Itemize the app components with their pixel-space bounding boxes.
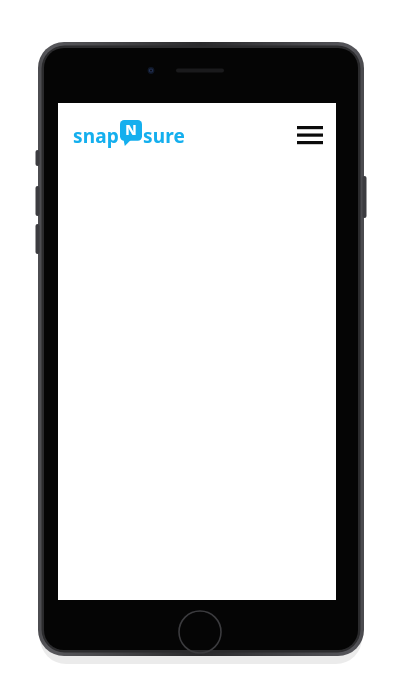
staticText: N (120, 120, 142, 141)
button[interactable]: Open menu (294, 119, 326, 147)
button[interactable]: snapNsure home (73, 118, 193, 152)
staticText: snap (73, 123, 120, 149)
staticText: sure (143, 123, 186, 149)
